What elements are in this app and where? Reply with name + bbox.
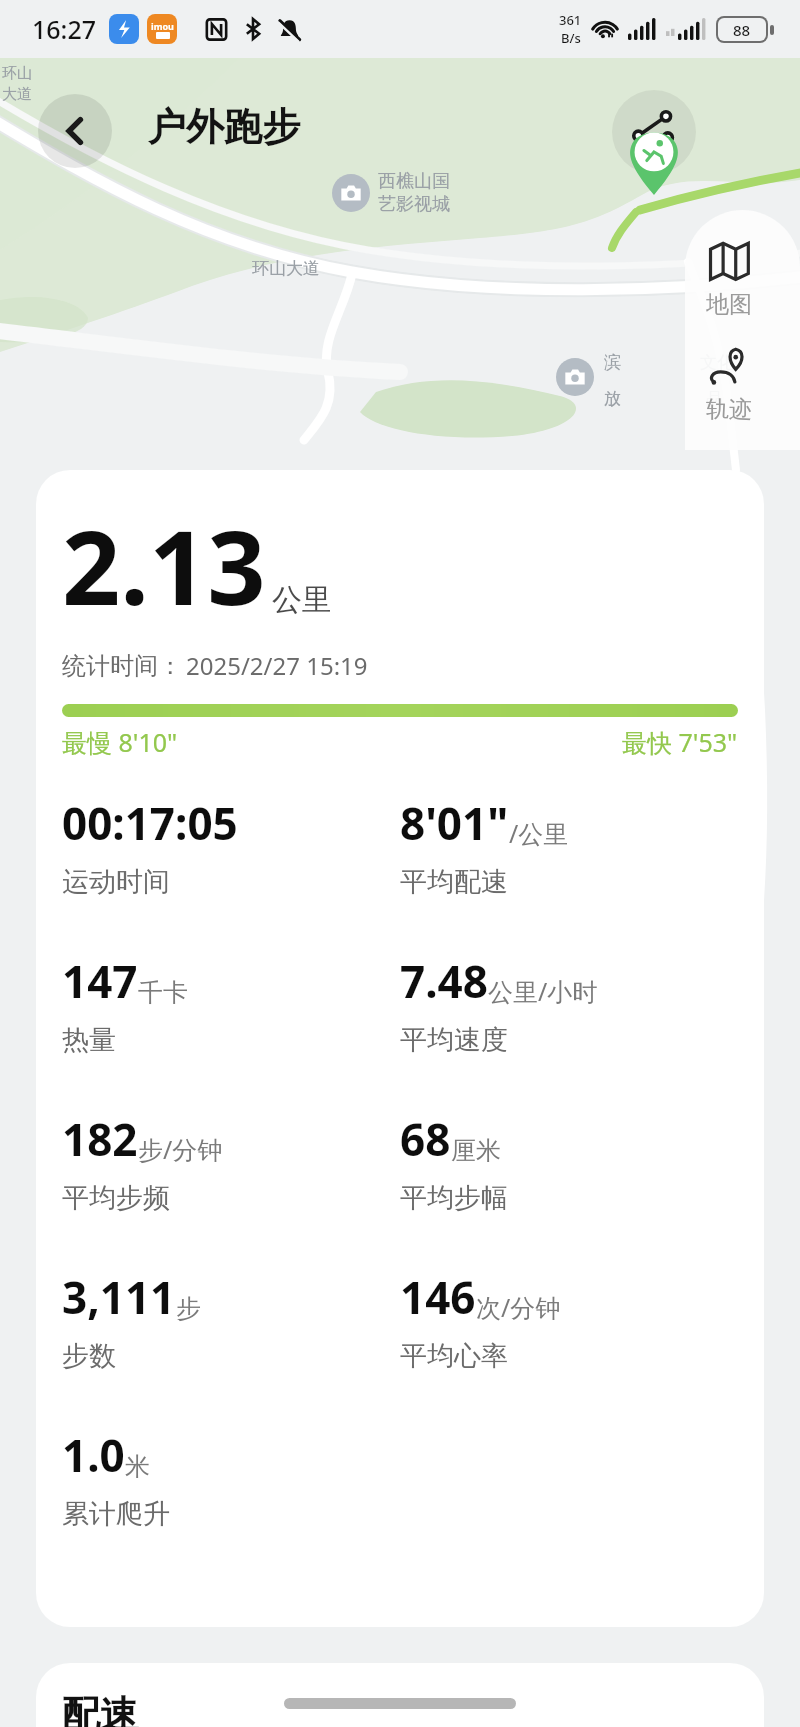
staticText: 环山 大道 (2, 64, 32, 104)
staticText: /公里 (509, 816, 569, 850)
button[interactable]: 轨迹 (685, 341, 773, 428)
staticText: 米 (125, 1451, 150, 1482)
staticText: 00:17:05 (62, 793, 238, 853)
staticText: 最快 7'53" (622, 725, 738, 759)
staticText: 步/分钟 (138, 1132, 223, 1166)
staticText: 公里/小时 (488, 974, 598, 1008)
staticText: 放 (604, 388, 621, 409)
staticText: 2.13 (62, 496, 266, 635)
staticText: 88 (733, 20, 751, 40)
staticText: 运动时间 (62, 865, 170, 899)
staticText: 环山大道 (252, 258, 320, 279)
button[interactable]: 地图 (685, 236, 773, 323)
staticText: 步数 (62, 1339, 116, 1373)
staticText: 68 (400, 1109, 451, 1169)
staticText: 3,111 (62, 1267, 176, 1327)
staticText: 最慢 8'10" (62, 725, 178, 759)
staticText: 西樵山国 (378, 170, 450, 193)
staticText: 次/分钟 (476, 1290, 561, 1324)
staticText: 146 (400, 1267, 476, 1327)
staticText: B/s (561, 29, 581, 47)
staticText: 16:27 (32, 12, 97, 46)
staticText: 平均步幅 (400, 1181, 508, 1215)
staticText: 厘米 (451, 1135, 501, 1166)
staticText: 户外跑步 (148, 103, 300, 151)
staticText: 公里 (272, 581, 332, 619)
staticText: 步 (176, 1293, 201, 1324)
staticText: 182 (62, 1109, 138, 1169)
staticText: 艺影视城 (378, 193, 450, 216)
staticText: 品 (706, 388, 723, 409)
staticText: 热量 (62, 1023, 116, 1057)
staticText: 滨 (604, 352, 621, 373)
staticText: 1.0 (62, 1425, 125, 1485)
staticText: 2025/2/27 15:19 (186, 649, 368, 682)
staticText: 147 (62, 951, 138, 1011)
staticText: 361 (559, 11, 582, 29)
staticText: 7.48 (400, 951, 488, 1011)
staticText: 地图 (706, 290, 752, 319)
staticText: 千卡 (138, 977, 188, 1008)
staticText: 平均配速 (400, 865, 508, 899)
staticText: 平均步频 (62, 1181, 170, 1215)
staticText: 8'01" (400, 793, 509, 853)
staticText: imou (151, 20, 174, 32)
staticText: 文化 (700, 352, 734, 373)
staticText: 轨迹 (706, 395, 752, 424)
staticText: 配速 (62, 1691, 138, 1727)
staticText: 平均心率 (400, 1339, 508, 1373)
staticText: 累计爬升 (62, 1497, 170, 1531)
staticText: 平均速度 (400, 1023, 508, 1057)
button[interactable]: Share (612, 90, 696, 174)
staticText: 统计时间： (62, 651, 182, 681)
other: Photo point of interest (332, 174, 370, 212)
button[interactable]: Back (38, 94, 112, 168)
other: Photo point of interest (556, 358, 594, 396)
